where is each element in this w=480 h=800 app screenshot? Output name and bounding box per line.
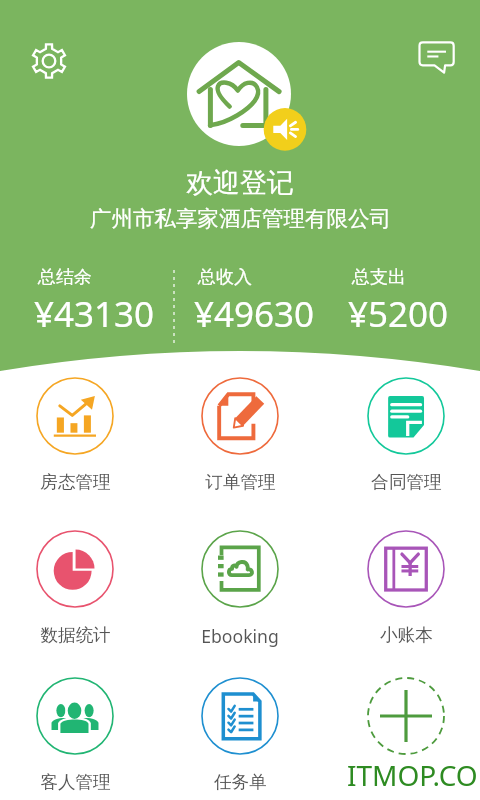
staticText: ¥5200 bbox=[348, 290, 449, 338]
staticText: 客人管理 bbox=[40, 771, 111, 793]
staticText: 总收入 bbox=[198, 266, 252, 289]
button[interactable]: 客人管理 bbox=[0, 677, 150, 793]
staticText: 任务单 bbox=[214, 771, 267, 793]
button[interactable]: 小账本 bbox=[331, 530, 480, 646]
button[interactable]: 合同管理 bbox=[331, 377, 480, 493]
staticText: ¥49630 bbox=[194, 290, 315, 338]
staticText: ITMOP.COM bbox=[347, 756, 480, 794]
staticText: Ebooking bbox=[201, 624, 279, 648]
button[interactable] bbox=[331, 677, 480, 755]
button[interactable]: Ebooking bbox=[165, 530, 315, 648]
staticText: 小账本 bbox=[380, 624, 433, 646]
button[interactable]: 订单管理 bbox=[165, 377, 315, 493]
staticText: 订单管理 bbox=[205, 471, 276, 493]
staticText: 数据统计 bbox=[40, 624, 111, 646]
staticText: 总结余 bbox=[38, 266, 92, 289]
button[interactable]: Messages bbox=[414, 38, 458, 82]
staticText: 广州市私享家酒店管理有限公司 bbox=[90, 205, 391, 232]
staticText: ¥43130 bbox=[34, 290, 155, 338]
staticText: 合同管理 bbox=[371, 471, 442, 493]
button[interactable]: 数据统计 bbox=[0, 530, 150, 646]
button[interactable]: Settings bbox=[26, 38, 72, 84]
staticText: 总支出 bbox=[352, 266, 406, 289]
staticText: 欢迎登记 bbox=[186, 166, 294, 200]
staticText: 房态管理 bbox=[40, 471, 111, 493]
button[interactable]: 任务单 bbox=[165, 677, 315, 793]
button[interactable]: 房态管理 bbox=[0, 377, 150, 493]
